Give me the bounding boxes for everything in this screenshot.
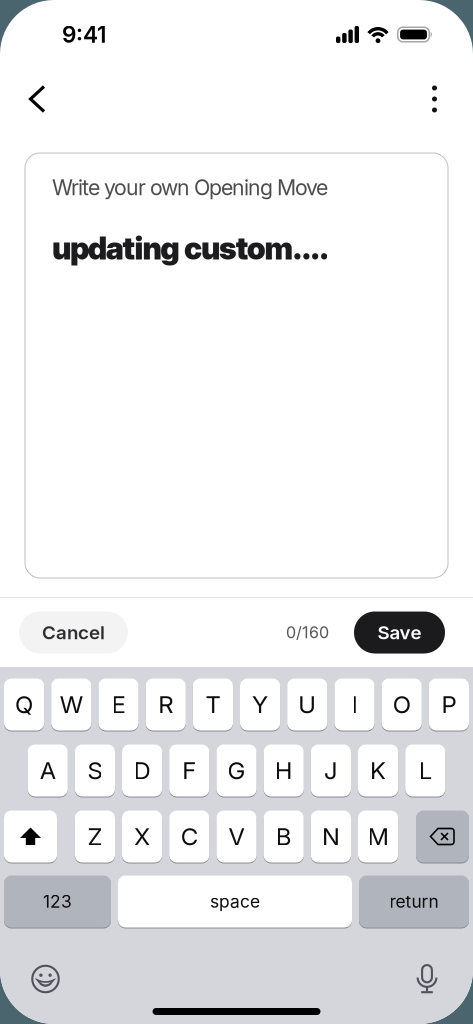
staticText: Z (87, 822, 102, 851)
staticText: M (368, 822, 389, 851)
button[interactable]: Save (354, 611, 445, 653)
staticText: O (393, 690, 411, 719)
button[interactable]: O (382, 678, 422, 731)
button[interactable]: Shift (4, 810, 57, 863)
staticText: X (134, 822, 150, 851)
button[interactable]: I (334, 678, 375, 731)
staticText: Write your own Opening Move (52, 175, 328, 200)
button[interactable]: T (193, 678, 233, 731)
staticText: Q (15, 690, 33, 719)
staticText: V (228, 822, 244, 851)
staticText: B (276, 822, 292, 851)
button[interactable]: K (358, 744, 398, 797)
staticText: 123 (43, 891, 72, 912)
staticText: Save (377, 621, 421, 643)
staticText: P (441, 690, 456, 719)
button[interactable]: Delete (416, 810, 469, 863)
staticText: L (419, 756, 432, 785)
button[interactable]: F (169, 744, 209, 797)
button[interactable]: X (122, 810, 162, 863)
button[interactable]: Back (0, 85, 46, 113)
button[interactable]: Q (4, 678, 44, 731)
button[interactable]: H (264, 744, 304, 797)
button[interactable]: V (216, 810, 257, 863)
staticText: space (210, 891, 260, 912)
button[interactable]: M (358, 810, 398, 863)
staticText: 0/160 (286, 623, 329, 642)
staticText: 9:41 (62, 21, 106, 48)
button[interactable]: B (264, 810, 304, 863)
staticText: K (370, 756, 386, 785)
staticText: J (324, 756, 338, 785)
button[interactable]: Y (240, 678, 280, 731)
staticText: return (389, 891, 438, 912)
staticText: I (351, 690, 357, 719)
button[interactable]: space (118, 875, 352, 928)
staticText: G (227, 756, 245, 785)
staticText: E (111, 690, 125, 719)
button[interactable]: N (311, 810, 351, 863)
button[interactable]: Z (75, 810, 115, 863)
staticText: T (205, 690, 220, 719)
button[interactable]: Cancel (19, 611, 128, 653)
button[interactable]: 123 (4, 875, 111, 928)
staticText: C (181, 822, 198, 851)
button[interactable]: C (169, 810, 209, 863)
staticText: H (275, 756, 293, 785)
staticText: S (87, 756, 102, 785)
button[interactable]: U (287, 678, 327, 731)
button[interactable]: return (359, 875, 469, 928)
staticText: Cancel (42, 621, 105, 643)
button[interactable]: G (216, 744, 257, 797)
button[interactable]: L (405, 744, 445, 797)
staticText: U (298, 690, 316, 719)
button[interactable]: J (311, 744, 351, 797)
button[interactable]: S (75, 744, 115, 797)
button[interactable]: D (122, 744, 162, 797)
staticText: N (322, 822, 340, 851)
staticText: F (182, 756, 196, 785)
button[interactable]: W (51, 678, 91, 731)
button[interactable]: More options (432, 85, 473, 112)
button[interactable]: Emoji (31, 964, 60, 993)
staticText: W (60, 690, 83, 719)
button[interactable]: P (429, 678, 469, 731)
button[interactable]: A (28, 744, 68, 797)
staticText: Y (252, 690, 268, 719)
staticText: R (158, 690, 173, 719)
staticText: A (40, 756, 56, 785)
button[interactable]: R (146, 678, 186, 731)
button[interactable]: Dictation (415, 964, 439, 994)
button[interactable]: E (98, 678, 139, 731)
staticText: D (134, 756, 151, 785)
staticText: updating custom.... (52, 230, 329, 266)
